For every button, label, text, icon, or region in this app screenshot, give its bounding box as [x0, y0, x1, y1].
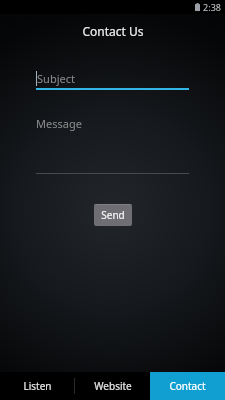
staticText: Send — [101, 208, 125, 222]
staticText: Website — [94, 379, 132, 393]
staticText: Listen — [23, 379, 52, 393]
staticText: Contact Us — [82, 23, 144, 39]
button[interactable]: Send — [94, 204, 132, 226]
button[interactable]: Message — [36, 116, 189, 174]
staticText: Subject — [37, 71, 75, 86]
staticText: Message — [36, 116, 82, 131]
button[interactable]: Website — [75, 372, 150, 400]
button[interactable]: Subject — [36, 70, 189, 90]
button[interactable]: Listen — [0, 372, 75, 400]
button[interactable]: Contact — [150, 372, 225, 400]
staticText: Contact — [169, 379, 206, 393]
staticText: 2:38 — [203, 1, 221, 13]
